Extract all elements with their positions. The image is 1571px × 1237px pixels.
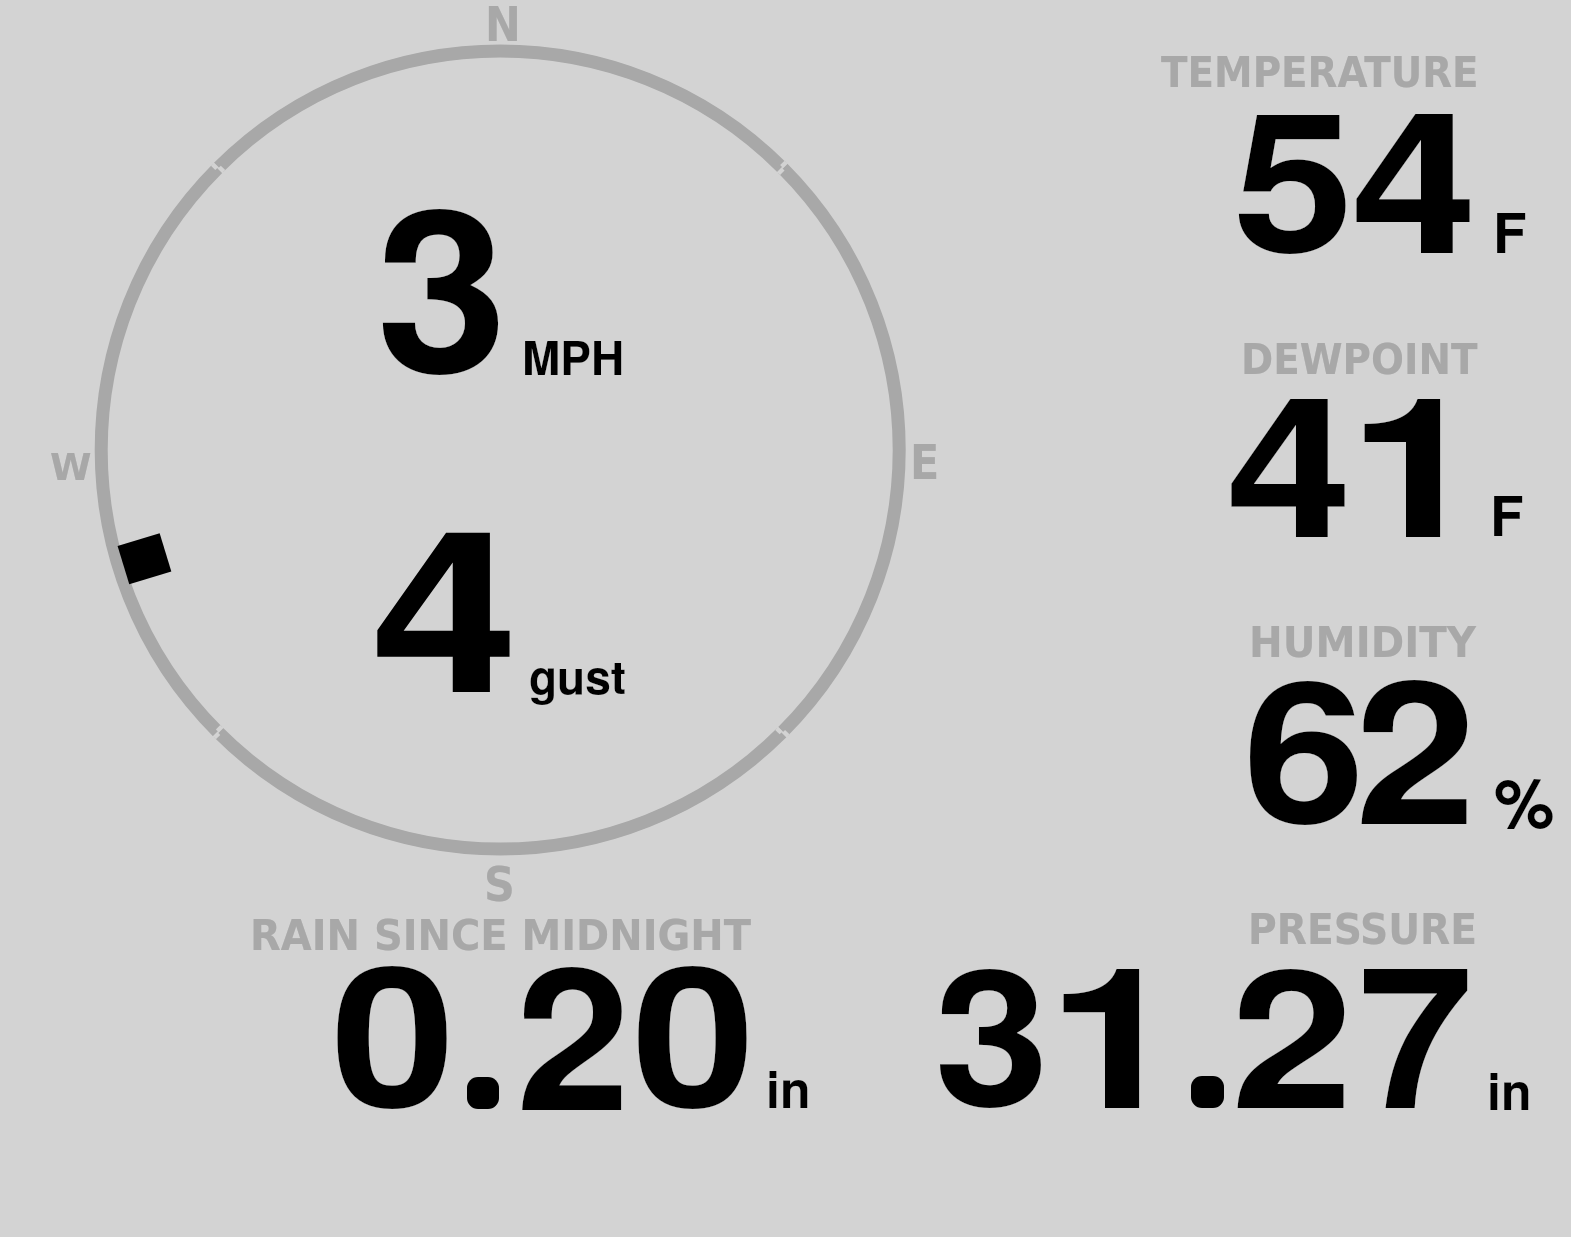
staticText: E xyxy=(910,435,940,490)
staticText: 2 xyxy=(1355,600,1476,885)
staticText: TEMPERATURE xyxy=(1161,48,1479,97)
staticText: HUMIDITY xyxy=(1249,618,1477,667)
staticText: PRESSURE xyxy=(1248,905,1478,954)
button[interactable]: Pressure 31.27 inches xyxy=(930,905,1530,1115)
button[interactable]: Rain since midnight 0.20 inches xyxy=(240,910,820,1115)
staticText: 3 xyxy=(934,893,1050,1164)
staticText: gust xyxy=(529,642,627,708)
staticText: 5 xyxy=(1233,34,1354,311)
staticText: 2 xyxy=(516,887,630,1170)
staticText: 4 xyxy=(1351,32,1478,313)
button[interactable]: Dew point 41 degrees Fahrenheit xyxy=(1150,335,1560,550)
staticText: 3 xyxy=(376,118,508,442)
staticText: 4 xyxy=(371,439,519,761)
staticText: 0 xyxy=(632,888,756,1167)
staticText: 2 xyxy=(1231,892,1353,1167)
staticText: N xyxy=(485,0,521,52)
staticText: 4 xyxy=(1226,318,1353,597)
staticText: F xyxy=(1490,474,1524,553)
staticText: F xyxy=(1493,191,1527,270)
staticText: 7 xyxy=(1358,887,1474,1168)
staticText: 1 xyxy=(1348,318,1484,597)
button[interactable]: Wind speed 3 miles per hour, gusting 4, … xyxy=(102,52,898,848)
staticText: 6 xyxy=(1243,602,1366,883)
staticText: MPH xyxy=(522,323,625,389)
staticText: RAIN SINCE MIDNIGHT xyxy=(250,911,752,960)
button[interactable]: Temperature 54 degrees Fahrenheit xyxy=(1150,48,1560,263)
button[interactable]: Humidity 62 percent xyxy=(1150,618,1560,833)
staticText: % xyxy=(1494,751,1555,848)
staticText: in xyxy=(1487,1054,1532,1126)
staticText: W xyxy=(50,446,92,489)
staticText: S xyxy=(484,857,515,912)
staticText: 0 xyxy=(331,888,456,1167)
staticText: DEWPOINT xyxy=(1241,335,1478,384)
staticText: 1 xyxy=(1047,887,1183,1168)
staticText: in xyxy=(766,1052,811,1124)
